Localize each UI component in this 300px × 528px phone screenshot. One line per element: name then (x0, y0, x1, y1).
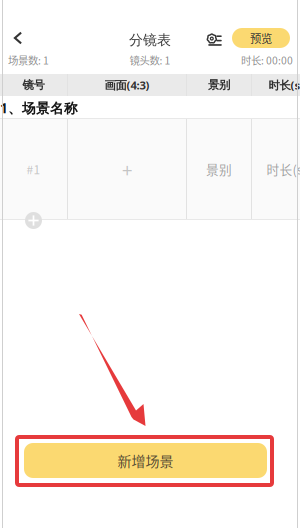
staticText: 时长(s) (268, 77, 300, 93)
staticText: 时长(s) (266, 160, 300, 178)
staticText: 景别 (208, 78, 230, 92)
staticText: 1、场景名称 (0, 99, 78, 117)
button[interactable]: 新增场景 (24, 443, 267, 478)
button[interactable]: 预览 (232, 28, 290, 48)
staticText: + (122, 155, 132, 182)
staticText: 场景数: 1 (8, 52, 49, 68)
staticText: 分镜表 (129, 31, 171, 49)
staticText: 预览 (250, 30, 272, 46)
button[interactable]: Back (3, 25, 33, 51)
staticText: 镜号 (22, 78, 44, 92)
staticText: 景别 (206, 160, 232, 178)
button[interactable]: Add shot (25, 212, 42, 229)
staticText: 时长: 00:00 (241, 52, 293, 68)
staticText: 镜头数: 1 (129, 52, 170, 68)
staticText: 新增场景 (117, 450, 173, 471)
staticText: 画面(4:3) (104, 77, 149, 93)
staticText: #1 (26, 160, 40, 178)
button[interactable]: Layout settings (203, 30, 225, 49)
